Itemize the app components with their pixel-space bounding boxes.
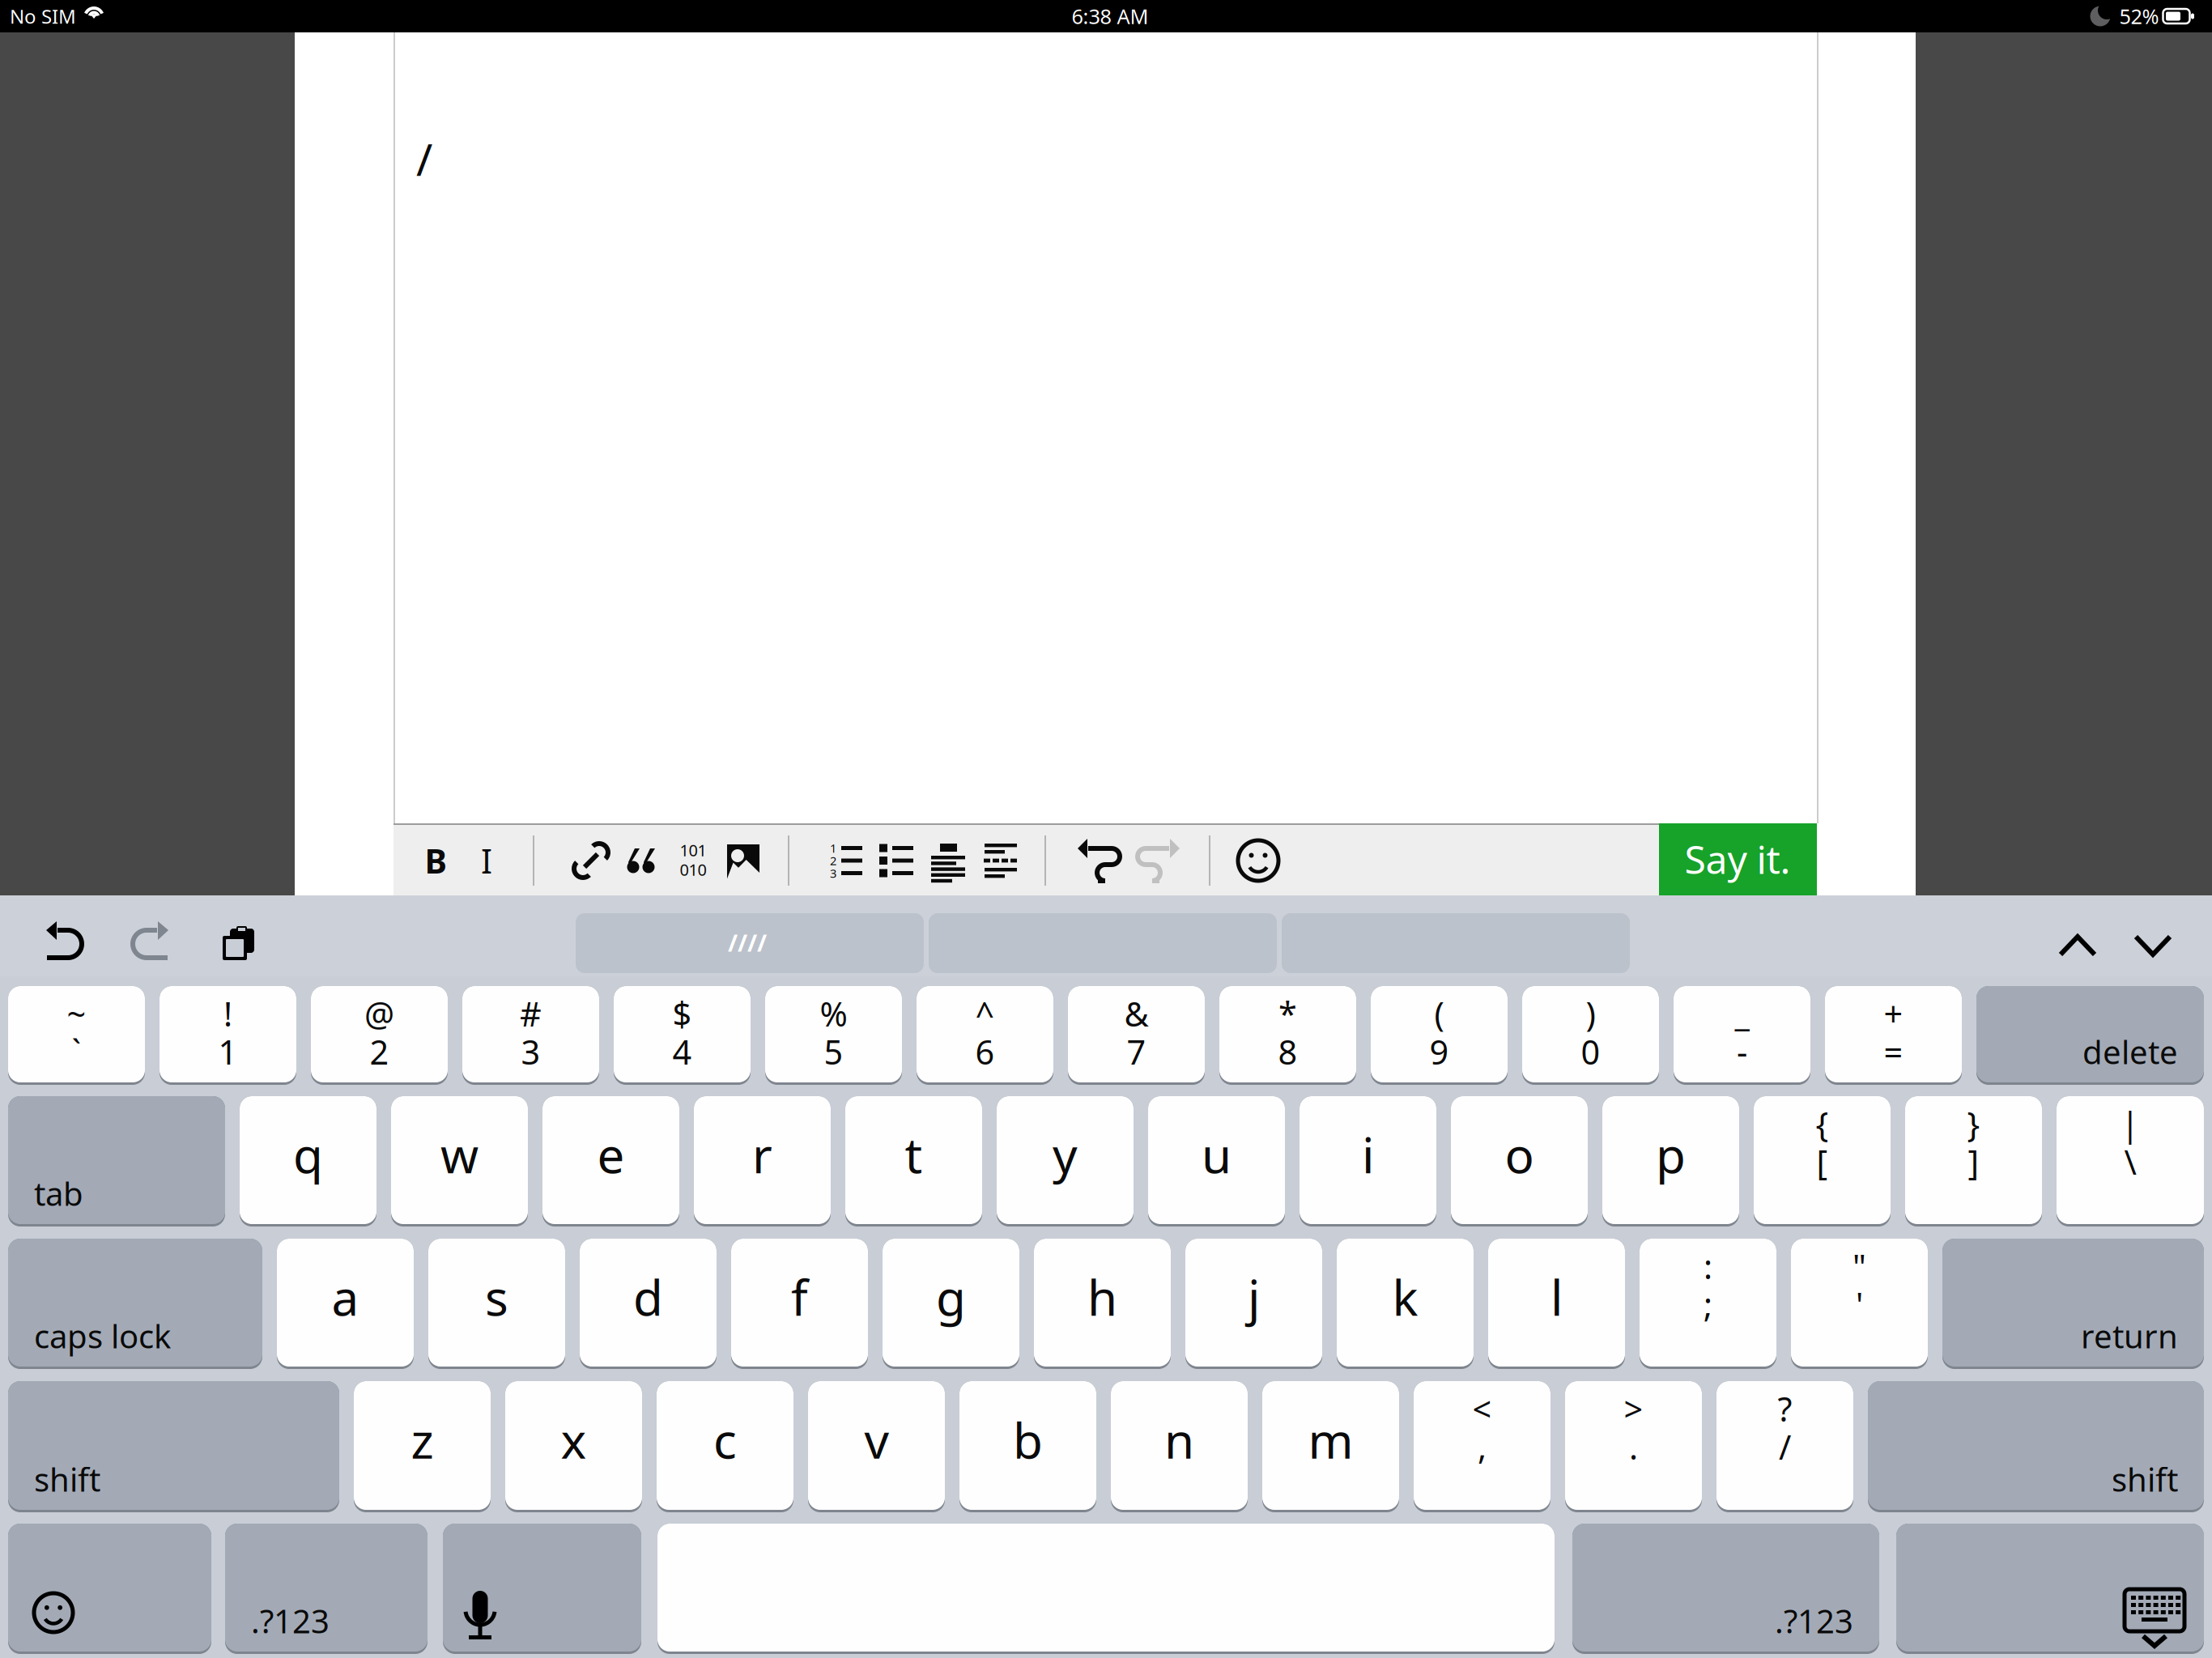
button[interactable]: delete <box>0 0 2212 1658</box>
button[interactable]: & <box>0 0 2212 1658</box>
button[interactable]: Insert link <box>0 0 2212 1658</box>
button[interactable]: p <box>0 0 2212 1658</box>
staticText: .?123 <box>1775 1599 1853 1642</box>
button[interactable]: Emoji <box>0 0 2212 1658</box>
button[interactable]: h <box>0 0 2212 1658</box>
button[interactable]: shift <box>0 0 2212 1658</box>
button[interactable]: _ <box>0 0 2212 1658</box>
button[interactable]: Undo <box>0 0 2212 1658</box>
button[interactable]: ^ <box>0 0 2212 1658</box>
button[interactable]: w <box>0 0 2212 1658</box>
button[interactable]: m <box>0 0 2212 1658</box>
button[interactable]: ? <box>0 0 2212 1658</box>
button[interactable]: Insert rule <box>0 0 2212 1658</box>
button[interactable]: Italic <box>0 0 2212 1658</box>
button[interactable]: | <box>0 0 2212 1658</box>
button[interactable]: < <box>0 0 2212 1658</box>
button[interactable]: u <box>0 0 2212 1658</box>
button[interactable]: Undo <box>0 0 2212 1658</box>
button[interactable]: Redo <box>0 0 2212 1658</box>
staticText: ! <box>223 991 232 1036</box>
button[interactable]: Align text <box>0 0 2212 1658</box>
staticText: r <box>752 1122 772 1187</box>
button[interactable]: @ <box>0 0 2212 1658</box>
button[interactable]: tab <box>0 0 2212 1658</box>
button[interactable]: Hide keyboard <box>0 0 2212 1658</box>
button[interactable]: Dictation <box>0 0 2212 1658</box>
button[interactable]: Emoji keyboard <box>0 0 2212 1658</box>
staticText: 1 <box>218 1029 238 1074</box>
button[interactable]: Space <box>0 0 2212 1658</box>
button[interactable]: v <box>0 0 2212 1658</box>
button[interactable]: shift <box>0 0 2212 1658</box>
button[interactable]: { <box>0 0 2212 1658</box>
staticText: ] <box>1968 1140 1979 1184</box>
staticText: l <box>1551 1265 1563 1329</box>
staticText: 7 <box>1127 1029 1146 1074</box>
button[interactable]: } <box>0 0 2212 1658</box>
button[interactable]: s <box>0 0 2212 1658</box>
button[interactable]: j <box>0 0 2212 1658</box>
button[interactable]: l <box>0 0 2212 1658</box>
staticText: _ <box>1735 991 1749 1036</box>
button[interactable]: d <box>0 0 2212 1658</box>
button[interactable]: Bulleted list <box>0 0 2212 1658</box>
button[interactable]: * <box>0 0 2212 1658</box>
button[interactable]: # <box>0 0 2212 1658</box>
staticText: c <box>713 1408 737 1472</box>
button[interactable]: ) <box>0 0 2212 1658</box>
button[interactable]: .?123 <box>0 0 2212 1658</box>
button[interactable]: i <box>0 0 2212 1658</box>
button[interactable]: Bold <box>0 0 2212 1658</box>
button[interactable]: caps lock <box>0 0 2212 1658</box>
button[interactable]: + <box>0 0 2212 1658</box>
button[interactable]: e <box>0 0 2212 1658</box>
button[interactable]: Numbered list <box>0 0 2212 1658</box>
button[interactable]: q <box>0 0 2212 1658</box>
button[interactable]: //// <box>0 0 2212 1658</box>
button[interactable]: Suggestion <box>0 0 2212 1658</box>
button[interactable]: Redo <box>0 0 2212 1658</box>
button[interactable]: x <box>0 0 2212 1658</box>
button[interactable]: n <box>0 0 2212 1658</box>
button[interactable]: : <box>0 0 2212 1658</box>
button[interactable]: z <box>0 0 2212 1658</box>
button[interactable]: k <box>0 0 2212 1658</box>
button[interactable]: ( <box>0 0 2212 1658</box>
button[interactable]: % <box>0 0 2212 1658</box>
staticText: 1 <box>830 840 836 856</box>
button[interactable]: f <box>0 0 2212 1658</box>
button[interactable]: y <box>0 0 2212 1658</box>
button[interactable]: > <box>0 0 2212 1658</box>
button[interactable]: c <box>0 0 2212 1658</box>
staticText: a <box>332 1265 359 1329</box>
staticText: s <box>485 1265 508 1329</box>
button[interactable]: a <box>0 0 2212 1658</box>
button[interactable]: return <box>0 0 2212 1658</box>
button[interactable]: " <box>0 0 2212 1658</box>
button[interactable]: Block quote <box>0 0 2212 1658</box>
button[interactable]: r <box>0 0 2212 1658</box>
staticText: .?123 <box>251 1599 330 1642</box>
button[interactable]: .?123 <box>0 0 2212 1658</box>
staticText: j <box>1248 1265 1260 1329</box>
button[interactable]: Paste <box>0 0 2212 1658</box>
button[interactable]: ! <box>0 0 2212 1658</box>
button[interactable]: Next field <box>0 0 2212 1658</box>
button[interactable]: ~ <box>0 0 2212 1658</box>
button[interactable]: Say it. <box>0 0 2212 1658</box>
staticText: - <box>1737 1029 1747 1074</box>
button[interactable]: $ <box>0 0 2212 1658</box>
staticText: } <box>1967 1102 1980 1146</box>
button[interactable]: b <box>0 0 2212 1658</box>
button[interactable]: Suggestion <box>0 0 2212 1658</box>
button[interactable]: Code block <box>0 0 2212 1658</box>
staticText: ~ <box>67 991 86 1036</box>
button[interactable]: t <box>0 0 2212 1658</box>
button[interactable]: Previous field <box>0 0 2212 1658</box>
button[interactable]: o <box>0 0 2212 1658</box>
button[interactable]: g <box>0 0 2212 1658</box>
staticText: f <box>791 1265 808 1329</box>
button[interactable]: Insert image <box>0 0 2212 1658</box>
staticText: 010 <box>680 859 706 880</box>
